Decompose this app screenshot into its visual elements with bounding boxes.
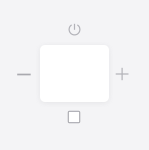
button[interactable]: Power (63, 18, 85, 40)
button[interactable]: Stop (63, 106, 85, 128)
button[interactable]: Increase (112, 63, 134, 85)
button[interactable]: Decrease (13, 63, 35, 85)
